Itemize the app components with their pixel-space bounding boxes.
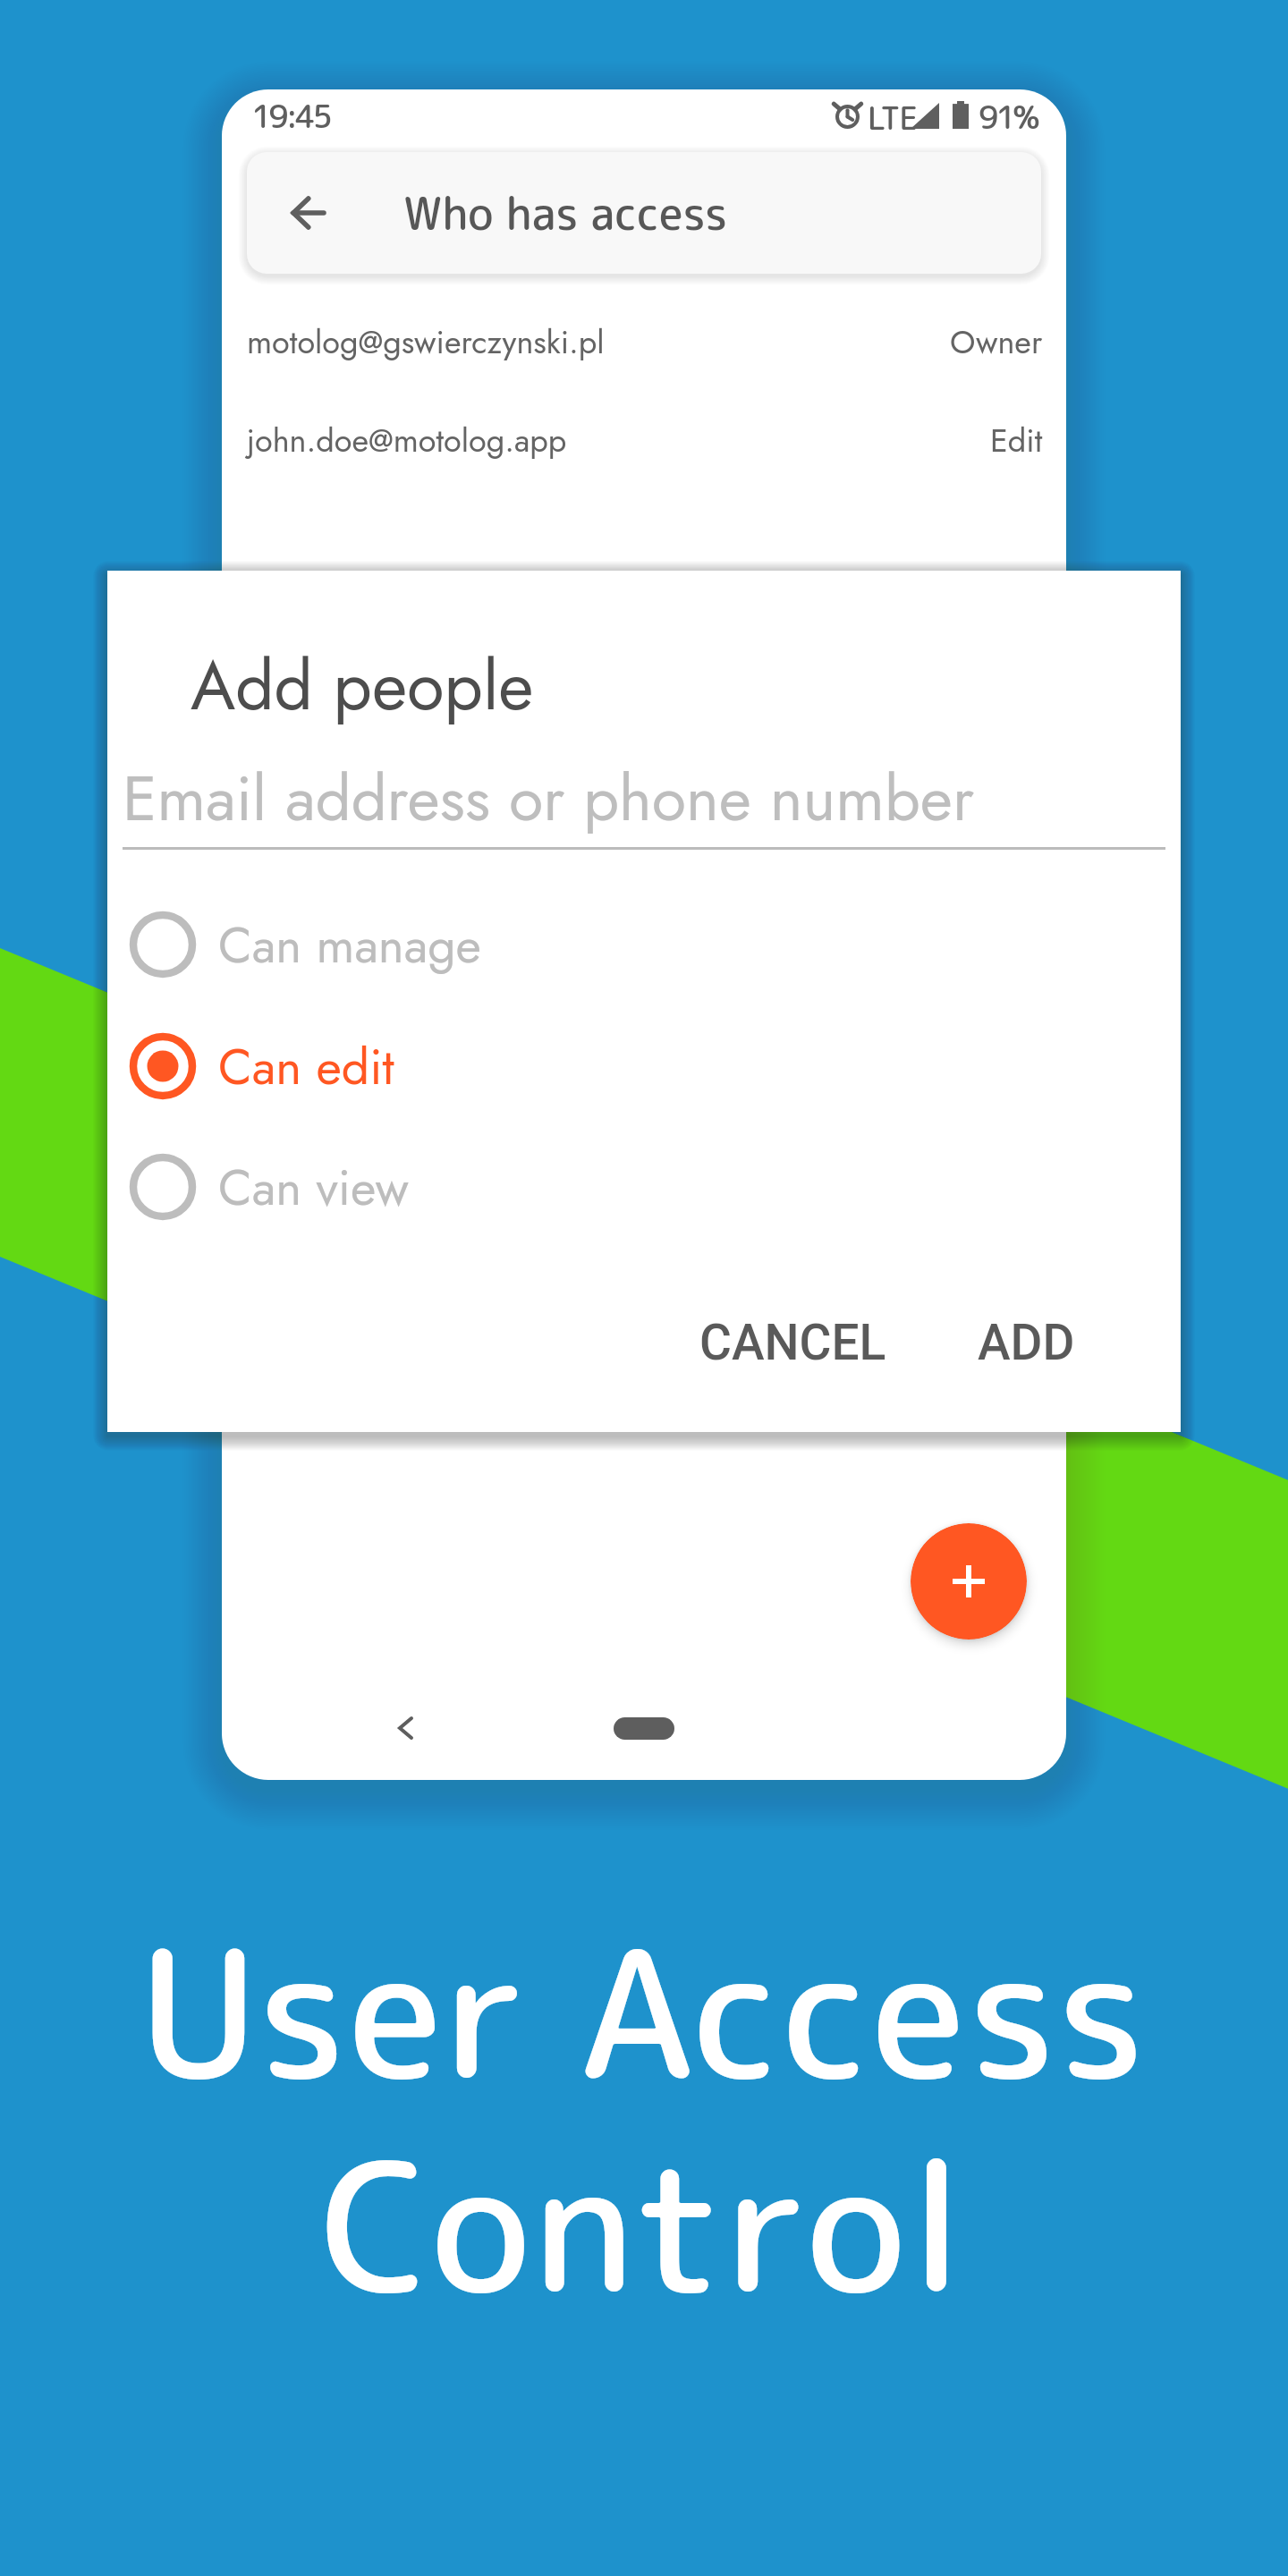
button[interactable]: ADD xyxy=(960,1300,1093,1385)
staticText: LTE xyxy=(868,96,918,140)
staticText: motolog@gswierczynski.pl xyxy=(247,318,605,365)
staticText: Can manage xyxy=(218,910,481,980)
staticText: Can edit xyxy=(218,1031,394,1102)
staticText: User Access Control xyxy=(0,1888,1288,2348)
staticText: ADD xyxy=(978,1314,1075,1371)
staticText: john.doe@motolog.app xyxy=(247,417,567,463)
button[interactable]: john.doe@motolog.app xyxy=(222,390,1066,489)
button[interactable]: Home xyxy=(614,1717,674,1740)
staticText: Edit xyxy=(990,417,1043,463)
staticText: Can view xyxy=(218,1152,409,1223)
button[interactable]: Add person xyxy=(911,1523,1027,1640)
button[interactable]: Back xyxy=(247,152,1041,274)
staticText: CANCEL xyxy=(699,1314,886,1371)
staticText: 91% xyxy=(979,94,1038,139)
staticText: Who has access xyxy=(403,182,728,244)
staticText: 19:45 xyxy=(251,93,330,138)
button[interactable]: Can manage xyxy=(107,884,1181,1005)
button[interactable]: Back xyxy=(364,1687,446,1769)
staticText: Owner xyxy=(950,318,1043,365)
button[interactable]: motolog@gswierczynski.pl xyxy=(222,292,1066,391)
button[interactable]: Back xyxy=(254,152,361,274)
staticText: Add people xyxy=(191,637,534,735)
button[interactable]: Can edit xyxy=(107,1005,1181,1127)
button[interactable]: Can view xyxy=(107,1126,1181,1248)
staticText: Email address or phone number xyxy=(123,753,974,843)
button[interactable]: CANCEL xyxy=(682,1300,904,1385)
